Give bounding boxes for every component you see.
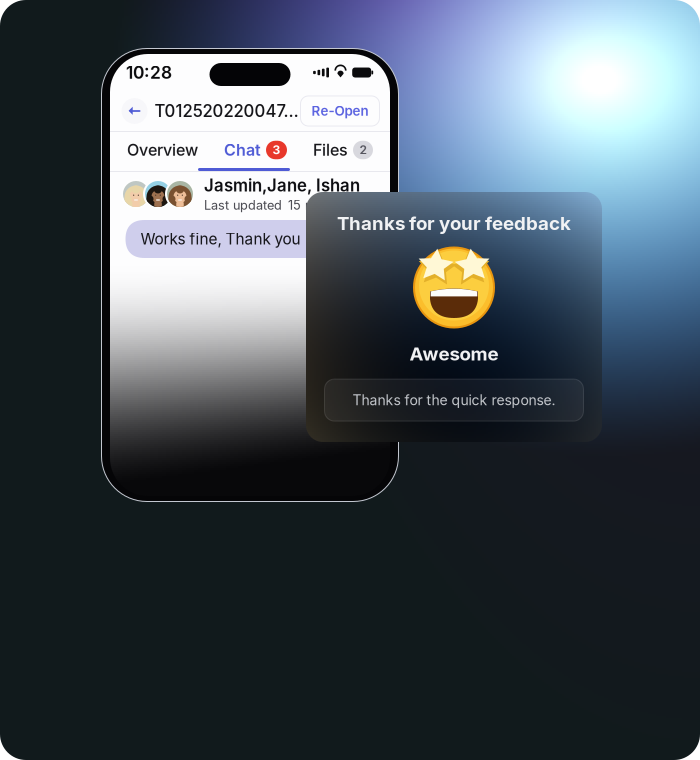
- staticText: Files: [313, 140, 348, 160]
- button[interactable]: Chat: [224, 135, 287, 165]
- staticText: Works fine, Thank you: [140, 230, 300, 248]
- staticText: Re-Open: [311, 103, 368, 119]
- staticText: Chat: [224, 140, 261, 160]
- staticText: 15 min ago: [288, 197, 353, 213]
- staticText: 10:28: [126, 62, 172, 83]
- staticText: 2: [359, 143, 366, 157]
- staticText: Jasmin,Jane, Ishan: [204, 175, 360, 195]
- staticText: 3: [272, 143, 280, 157]
- staticText: Awesome: [409, 342, 498, 365]
- staticText: Last updated: [204, 197, 282, 213]
- staticText: Overview: [127, 140, 198, 160]
- staticText: Thanks for the quick response.: [352, 392, 555, 408]
- button[interactable]: Files: [313, 135, 373, 165]
- button[interactable]: Back: [120, 97, 148, 125]
- staticText: T012520220047…: [154, 101, 298, 121]
- button[interactable]: Re-Open: [300, 96, 379, 126]
- staticText: Thanks for your feedback: [337, 212, 571, 234]
- button[interactable]: Overview: [127, 135, 198, 165]
